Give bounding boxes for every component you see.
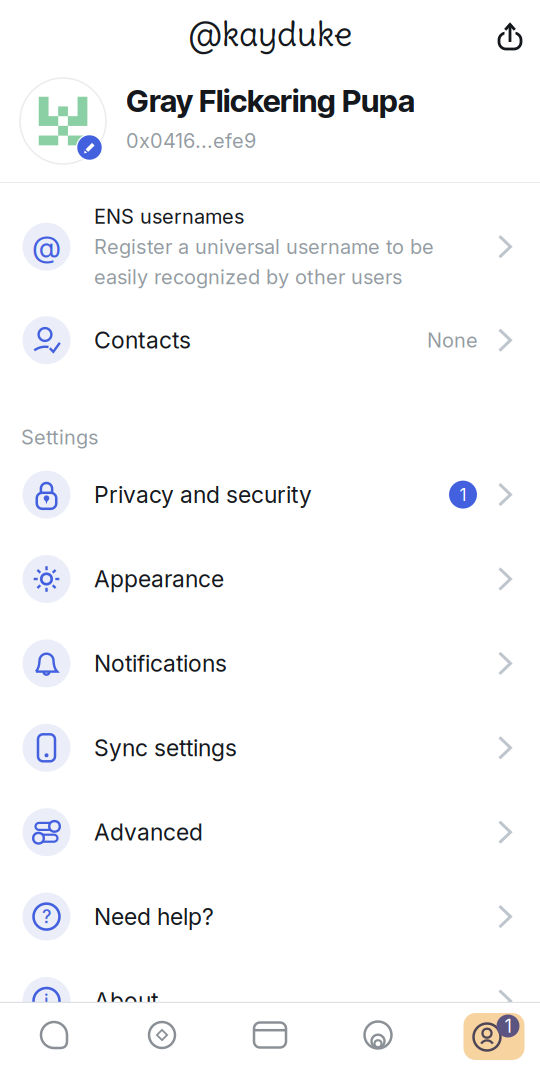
staticText: Settings xyxy=(21,425,98,449)
button[interactable]: Sync settings xyxy=(0,706,540,790)
button[interactable]: Appearance xyxy=(0,537,540,621)
staticText: Sync settings xyxy=(94,734,237,762)
button[interactable]: Notifications xyxy=(0,621,540,706)
staticText: Privacy and security xyxy=(94,481,312,508)
button[interactable]: ? xyxy=(0,874,540,959)
button[interactable]: i xyxy=(0,959,540,1043)
staticText: easily recognized by other users xyxy=(94,265,402,289)
staticText: None xyxy=(427,328,478,352)
staticText: About xyxy=(94,987,158,1015)
button[interactable]: @ xyxy=(0,183,540,310)
staticText: ENS usernames xyxy=(94,204,244,229)
staticText: 0x0416...efe9 xyxy=(126,128,256,153)
button[interactable]: Wallet xyxy=(216,1003,324,1080)
button[interactable]: Browser xyxy=(108,1003,216,1080)
button[interactable]: Contacts xyxy=(0,310,540,370)
staticText: Notifications xyxy=(94,649,227,677)
staticText: @kayduke xyxy=(188,13,352,55)
button[interactable]: Profile xyxy=(432,1003,540,1080)
staticText: @ xyxy=(32,229,61,265)
button[interactable]: Privacy and security xyxy=(0,452,540,537)
staticText: Advanced xyxy=(94,818,203,846)
button[interactable]: Communities xyxy=(324,1003,432,1080)
staticText: Gray Flickering Pupa xyxy=(126,82,415,119)
staticText: Register a universal username to be xyxy=(94,235,434,259)
button[interactable]: Share profile xyxy=(489,23,540,49)
button[interactable]: Edit profile image xyxy=(20,78,106,164)
button[interactable]: Chats xyxy=(0,1003,108,1080)
staticText: i xyxy=(44,990,49,1012)
staticText: Appearance xyxy=(94,565,224,593)
staticText: Contacts xyxy=(94,326,191,354)
staticText: 1 xyxy=(459,484,466,505)
staticText: Need help? xyxy=(94,903,214,930)
staticText: ? xyxy=(42,906,51,927)
button[interactable]: Advanced xyxy=(0,790,540,874)
staticText: 1 xyxy=(504,1015,511,1037)
